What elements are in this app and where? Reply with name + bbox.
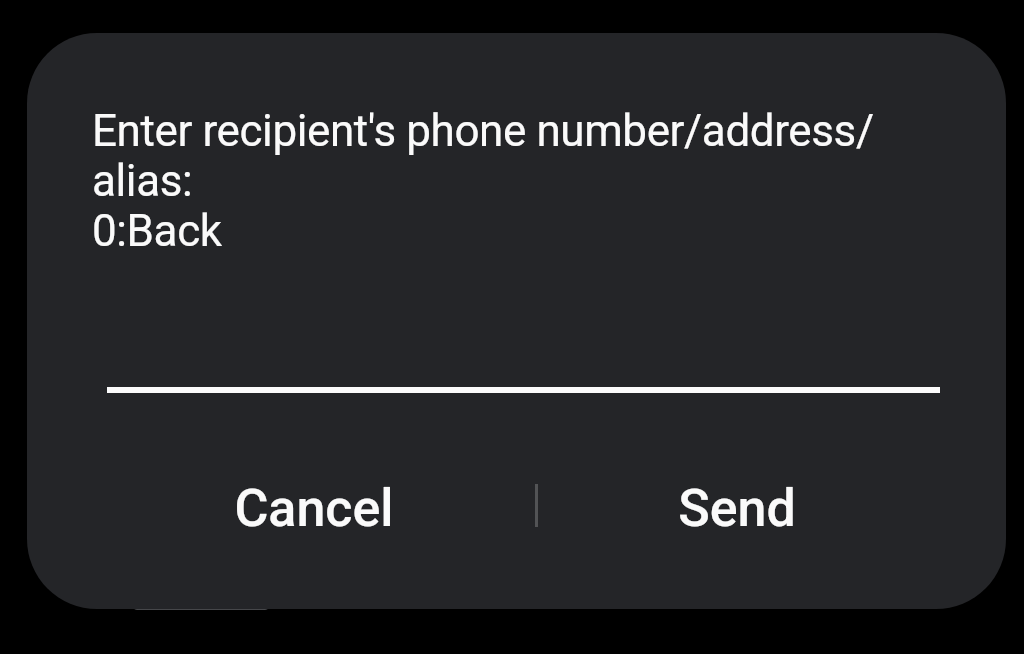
button[interactable]: Recipient input field [107,301,940,393]
staticText: Send [678,478,796,539]
staticText: Enter recipient's phone number/address/a… [92,105,952,256]
button[interactable]: Cancel [178,459,450,557]
button[interactable]: Send [621,459,853,557]
staticText: Cancel [234,478,394,539]
